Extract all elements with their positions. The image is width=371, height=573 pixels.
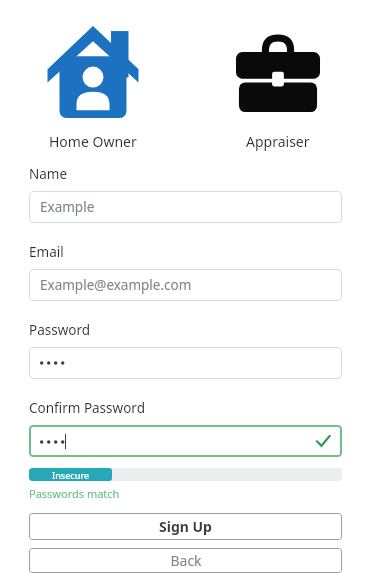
other: Passwords match [315,433,331,449]
staticText: Email [29,243,64,261]
staticText: Appraiser [246,132,310,151]
staticText: Confirm Password [29,399,145,417]
button[interactable]: Passwords match [29,425,342,457]
staticText: Insecure [52,469,90,481]
button[interactable]: Sign Up [29,513,342,540]
other: Appraiser [236,38,320,112]
staticText: Home Owner [49,132,137,151]
button[interactable]: Back [29,548,342,573]
staticText: Name [29,165,68,183]
staticText: Example [40,198,95,216]
button[interactable]: Example@example.com [29,269,342,301]
other: Home Owner [43,26,143,118]
staticText: Password [29,321,91,339]
staticText: Back [170,551,202,570]
staticText: Passwords match [29,486,120,501]
button[interactable]: Example [29,191,342,223]
button[interactable] [29,347,342,379]
staticText: Example@example.com [40,276,192,294]
button[interactable]: Home Owner [0,0,185,151]
button[interactable]: Appraiser [185,4,371,151]
staticText: Sign Up [159,517,212,536]
